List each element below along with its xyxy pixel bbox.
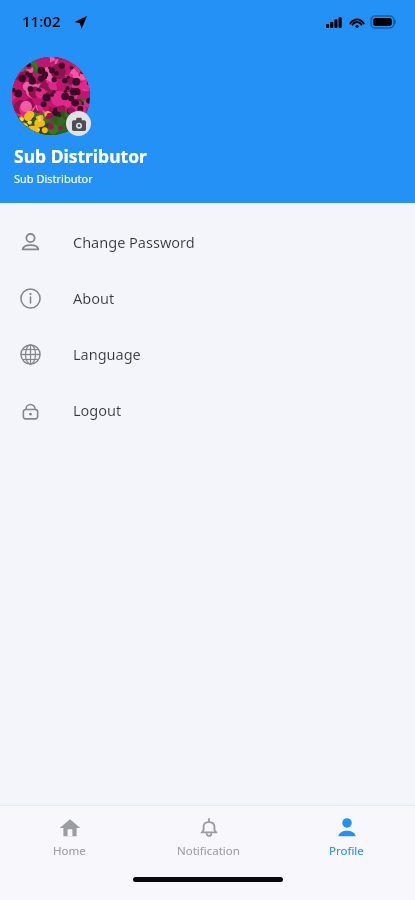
staticText: About [73, 288, 115, 308]
button[interactable]: Language [0, 326, 415, 382]
button[interactable]: Home [0, 806, 139, 868]
staticText: Profile [329, 843, 364, 859]
staticText: 11:02 [22, 11, 61, 31]
staticText: Home [53, 843, 86, 859]
button[interactable]: Profile [277, 806, 415, 868]
button[interactable]: About [0, 270, 415, 326]
staticText: Sub Distributor [14, 144, 147, 168]
staticText: Language [73, 344, 141, 364]
staticText: Logout [73, 400, 122, 420]
button[interactable]: Change Password [0, 214, 415, 270]
button[interactable]: Change photo [66, 111, 91, 136]
staticText: Sub Distributor [14, 171, 93, 186]
button[interactable]: Notification [139, 806, 277, 868]
staticText: Notification [177, 843, 240, 859]
button[interactable]: Logout [0, 382, 415, 438]
button[interactable]: Profile photo [12, 57, 90, 135]
staticText: Change Password [73, 232, 195, 252]
